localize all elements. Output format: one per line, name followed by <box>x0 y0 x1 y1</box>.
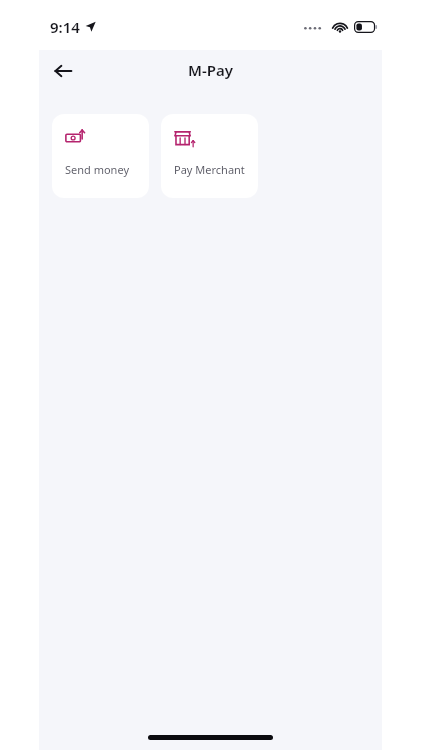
staticText: Send money <box>65 162 129 177</box>
staticText: Pay Merchant <box>174 162 245 177</box>
button[interactable]: Send money <box>52 114 149 198</box>
staticText: 9:14 <box>50 17 80 37</box>
button[interactable]: Back <box>47 55 79 87</box>
staticText: M-Pay <box>188 60 233 80</box>
button[interactable]: Pay Merchant <box>161 114 258 198</box>
